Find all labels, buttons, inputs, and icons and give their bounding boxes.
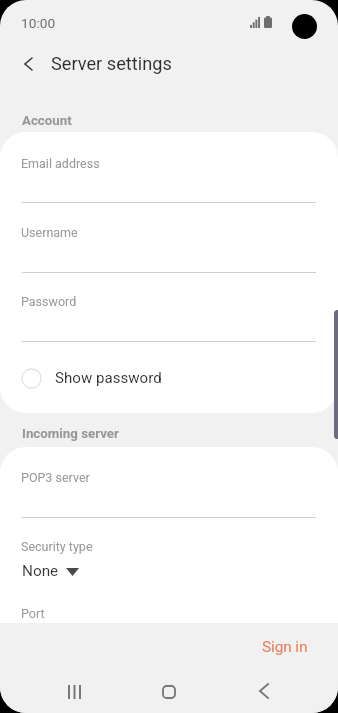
staticText: POP3 server xyxy=(21,470,90,485)
staticText: Account xyxy=(22,113,72,129)
staticText: Email address xyxy=(21,156,100,171)
button[interactable]: None xyxy=(22,562,79,580)
staticText: Username xyxy=(21,225,78,240)
staticText: Port xyxy=(21,606,45,621)
button[interactable]: Sign in xyxy=(250,631,320,663)
staticText: Sign in xyxy=(262,638,308,656)
staticText: Security type xyxy=(21,539,93,554)
staticText: Show password xyxy=(55,369,162,387)
button[interactable]: Show password xyxy=(0,358,338,398)
button[interactable]: Recent apps xyxy=(27,668,121,713)
staticText: Password xyxy=(21,294,77,309)
button[interactable]: Navigate up xyxy=(6,42,50,86)
staticText: Incoming server xyxy=(22,426,119,442)
button[interactable]: Home xyxy=(121,668,216,713)
staticText: 10:00 xyxy=(21,15,56,31)
button[interactable]: Back xyxy=(216,668,311,713)
staticText: Server settings xyxy=(51,53,172,74)
staticText: None xyxy=(22,562,59,580)
